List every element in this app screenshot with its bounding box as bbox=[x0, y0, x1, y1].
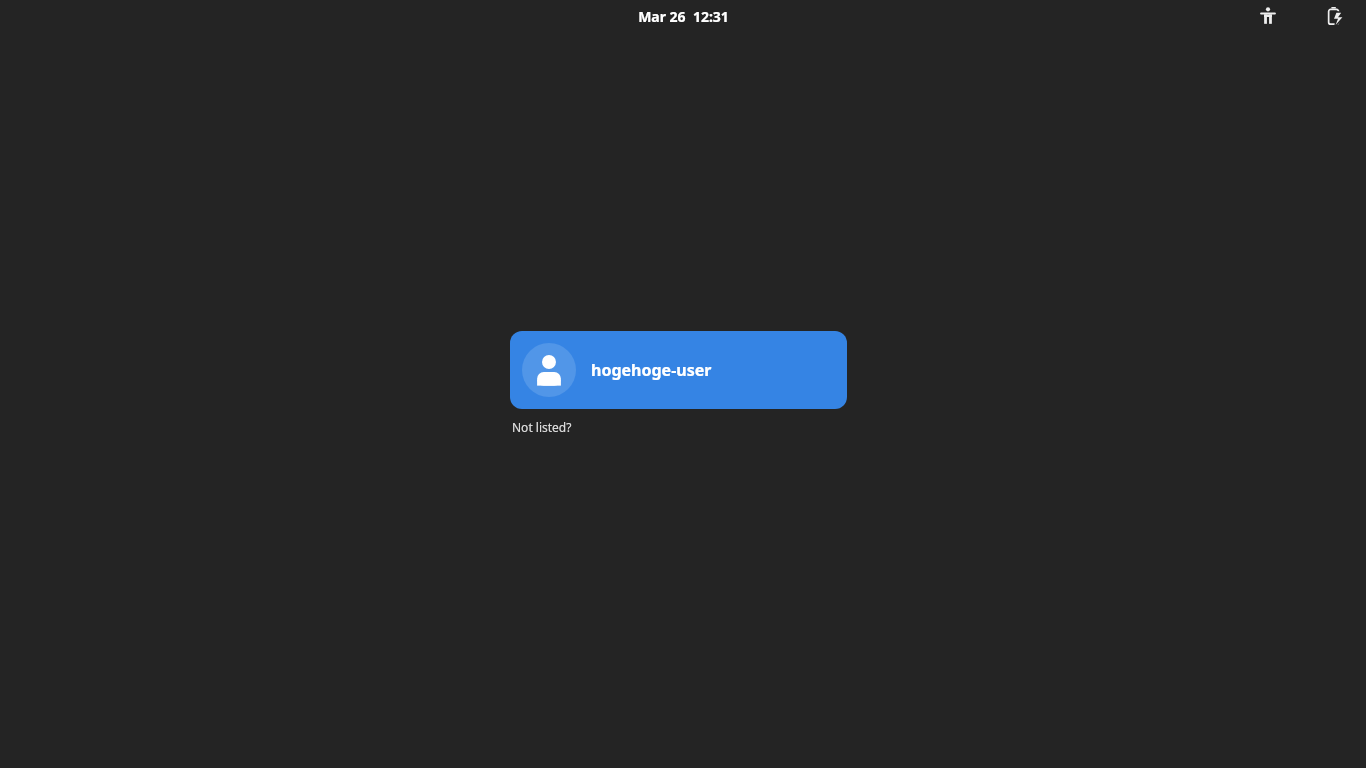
staticText: Mar 26 12:31 bbox=[638, 7, 729, 26]
button[interactable]: Accessibility bbox=[1252, 0, 1284, 32]
button[interactable]: Battery charging bbox=[1318, 0, 1350, 32]
button[interactable]: Not listed? bbox=[510, 417, 574, 437]
staticText: Not listed? bbox=[512, 419, 572, 435]
button[interactable]: hogehoge-user bbox=[510, 331, 847, 409]
staticText: hogehoge-user bbox=[591, 359, 712, 381]
